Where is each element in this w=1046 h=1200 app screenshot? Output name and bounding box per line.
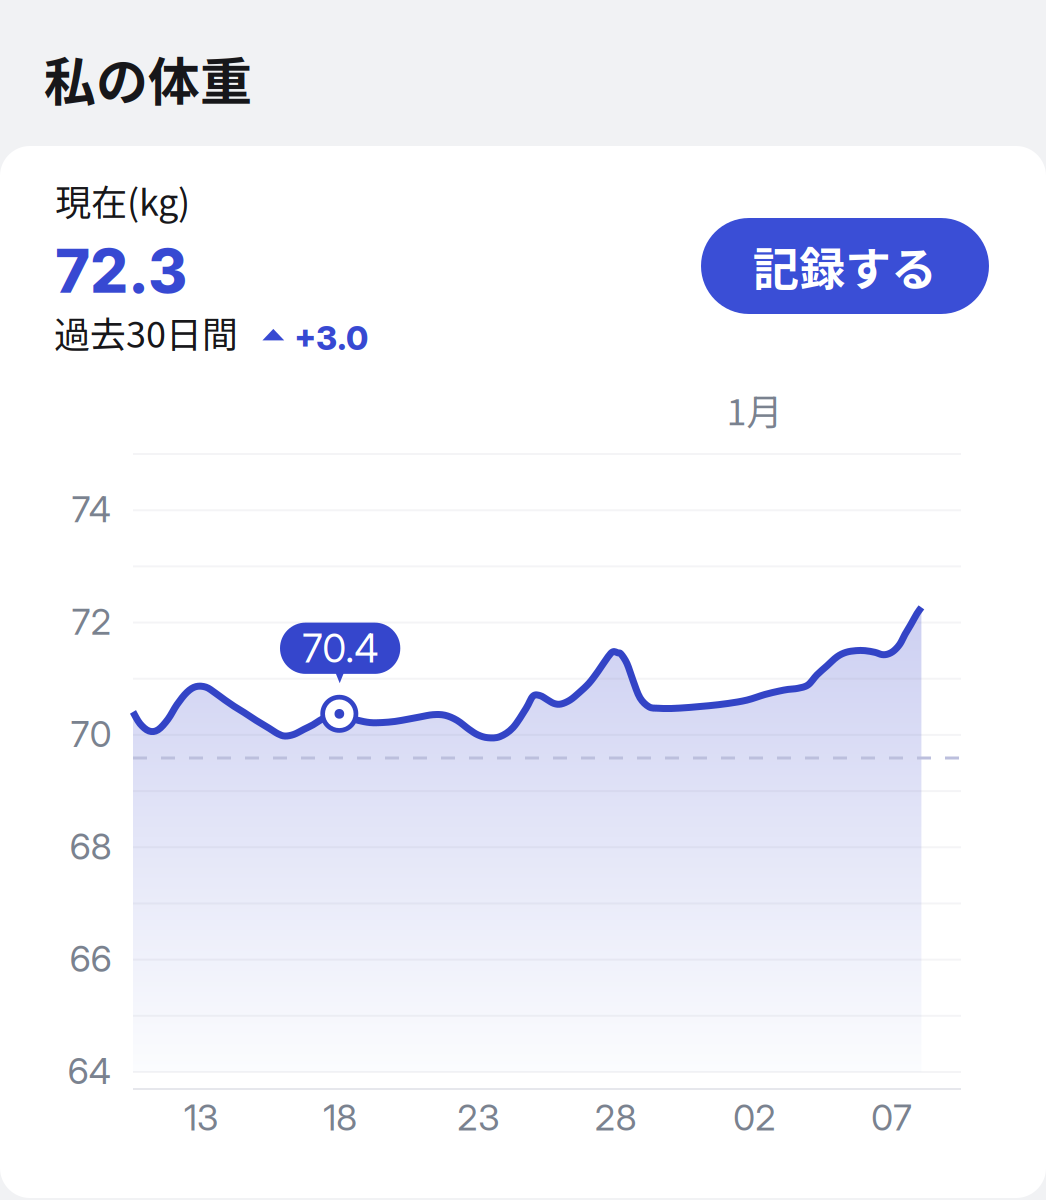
staticText: 13 xyxy=(184,1096,219,1139)
staticText: 23 xyxy=(457,1096,500,1139)
staticText: 02 xyxy=(733,1096,776,1139)
staticText: 私の体重 xyxy=(44,40,252,116)
staticText: 72.3 xyxy=(55,235,187,307)
staticText: 74 xyxy=(71,487,111,531)
staticText: 28 xyxy=(595,1096,637,1139)
staticText: 66 xyxy=(69,937,111,980)
staticText: 07 xyxy=(871,1096,912,1139)
staticText: 64 xyxy=(67,1049,111,1093)
staticText: 70 xyxy=(70,712,111,756)
staticText: 72 xyxy=(71,600,111,643)
staticText: 過去30日間 xyxy=(54,306,238,358)
staticText: +3.0 xyxy=(294,318,368,358)
staticText: 18 xyxy=(323,1096,357,1139)
staticText: 70.4 xyxy=(302,625,378,672)
staticText: 記録する xyxy=(753,233,937,299)
staticText: 68 xyxy=(69,824,111,868)
staticText: 現在(kg) xyxy=(55,174,190,226)
button[interactable]: 記録する xyxy=(701,218,989,314)
staticText: 1月 xyxy=(726,383,782,435)
